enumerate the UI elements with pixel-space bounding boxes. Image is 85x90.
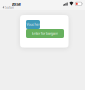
staticText: 20:58	[11, 1, 20, 7]
button[interactable]: Enter for bargain	[26, 29, 64, 38]
button[interactable]: Safari	[2, 5, 14, 9]
staticText: Safari	[5, 5, 14, 10]
button[interactable]: Voucher	[26, 20, 40, 29]
staticText: Enter for bargain	[32, 31, 58, 36]
staticText: Voucher	[26, 22, 39, 27]
